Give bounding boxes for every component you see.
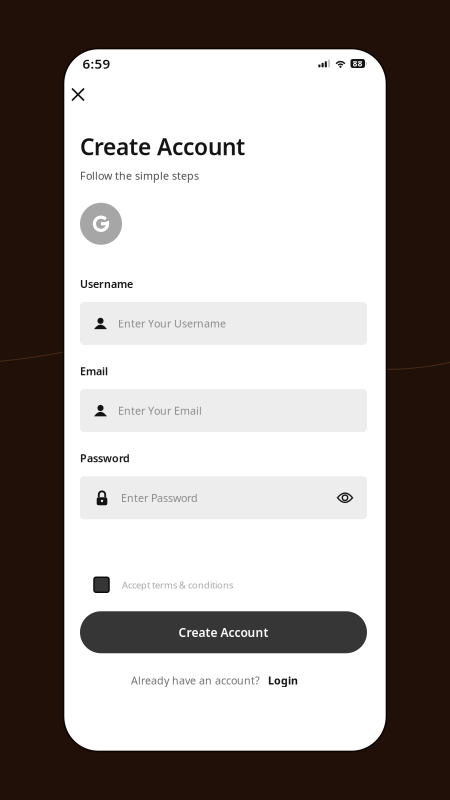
staticText: Create Account bbox=[80, 131, 245, 162]
staticText: Enter Your Username bbox=[118, 316, 226, 331]
staticText: Create Account bbox=[178, 624, 268, 640]
staticText: Accept terms & conditions bbox=[122, 579, 233, 591]
button[interactable]: Show password bbox=[337, 490, 353, 506]
button[interactable]: Close bbox=[63, 78, 100, 110]
staticText: 88 bbox=[353, 58, 363, 69]
staticText: Password bbox=[80, 451, 130, 465]
staticText: 6:59 bbox=[82, 55, 110, 72]
button[interactable]: Accept terms & conditions bbox=[80, 573, 367, 596]
staticText: Username bbox=[80, 277, 133, 291]
staticText: Email bbox=[80, 364, 108, 378]
button[interactable]: Create Account bbox=[80, 611, 367, 653]
button[interactable]: Login bbox=[268, 671, 298, 689]
button[interactable]: Sign up with Google bbox=[80, 203, 122, 245]
staticText: Enter Your Email bbox=[118, 403, 202, 418]
staticText: Login bbox=[268, 673, 298, 687]
staticText: Follow the simple steps bbox=[80, 169, 199, 183]
staticText: Already have an account? bbox=[131, 673, 260, 687]
staticText: Enter Password bbox=[121, 491, 198, 505]
